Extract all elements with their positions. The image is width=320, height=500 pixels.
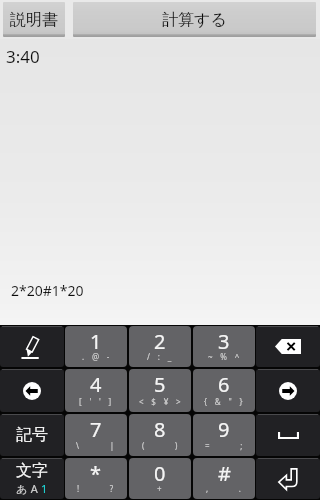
staticText: 8 bbox=[154, 416, 166, 443]
button[interactable]: Enter bbox=[256, 458, 320, 499]
staticText: , . bbox=[206, 483, 243, 494]
button[interactable]: # bbox=[193, 458, 255, 499]
button[interactable]: 1 bbox=[65, 326, 127, 367]
staticText: 7 bbox=[90, 416, 102, 443]
button[interactable]: * bbox=[65, 458, 127, 499]
button[interactable]: 計算する bbox=[73, 2, 316, 37]
staticText: = ; bbox=[205, 440, 244, 451]
staticText: 文字 bbox=[16, 461, 48, 481]
staticText: 1 bbox=[41, 481, 48, 496]
button[interactable]: 4 bbox=[65, 369, 127, 412]
staticText: 記号 bbox=[16, 425, 48, 445]
staticText: 0 bbox=[154, 460, 166, 487]
button[interactable]: 0 bbox=[129, 458, 191, 499]
button[interactable]: 6 bbox=[193, 369, 255, 412]
button[interactable]: Handwriting input bbox=[0, 326, 64, 367]
staticText: 計算する bbox=[162, 10, 227, 30]
button[interactable]: Switch character type bbox=[0, 458, 64, 499]
staticText: 1 bbox=[90, 328, 102, 355]
staticText: + bbox=[157, 483, 163, 494]
button[interactable]: Backspace bbox=[256, 326, 320, 367]
staticText: < $ ¥ > bbox=[139, 396, 182, 407]
staticText: 9 bbox=[218, 416, 230, 443]
button[interactable]: 説明書 bbox=[3, 2, 65, 37]
staticText: 3:40 bbox=[6, 45, 40, 68]
staticText: 3 bbox=[218, 328, 230, 355]
staticText: 4 bbox=[90, 371, 102, 398]
staticText: / : _ bbox=[147, 351, 173, 362]
staticText: あ bbox=[16, 482, 28, 496]
button[interactable]: 2 bbox=[129, 326, 191, 367]
staticText: A bbox=[28, 481, 41, 496]
staticText: \ | bbox=[76, 440, 116, 451]
button[interactable]: Move cursor right bbox=[256, 369, 320, 412]
staticText: # bbox=[218, 460, 231, 487]
staticText: ( ) bbox=[142, 440, 179, 451]
staticText: * bbox=[90, 460, 102, 487]
button[interactable]: Space bbox=[256, 414, 320, 456]
button[interactable]: 9 bbox=[193, 414, 255, 456]
staticText: 5 bbox=[154, 371, 166, 398]
button[interactable]: 3 bbox=[193, 326, 255, 367]
staticText: { & " } bbox=[204, 396, 244, 407]
button[interactable]: 7 bbox=[65, 414, 127, 456]
staticText: 2*20#1*20 bbox=[11, 281, 84, 300]
staticText: ~ % ^ bbox=[208, 351, 241, 362]
button[interactable]: Symbols bbox=[0, 414, 64, 456]
staticText: 2 bbox=[154, 328, 166, 355]
button[interactable]: 8 bbox=[129, 414, 191, 456]
button[interactable]: 5 bbox=[129, 369, 191, 412]
staticText: [ ' ' ] bbox=[79, 396, 113, 407]
staticText: 説明書 bbox=[10, 10, 58, 30]
staticText: . @ - bbox=[82, 351, 111, 362]
staticText: 6 bbox=[218, 371, 230, 398]
button[interactable]: Move cursor left bbox=[0, 369, 64, 412]
staticText: ! ? bbox=[77, 483, 115, 494]
